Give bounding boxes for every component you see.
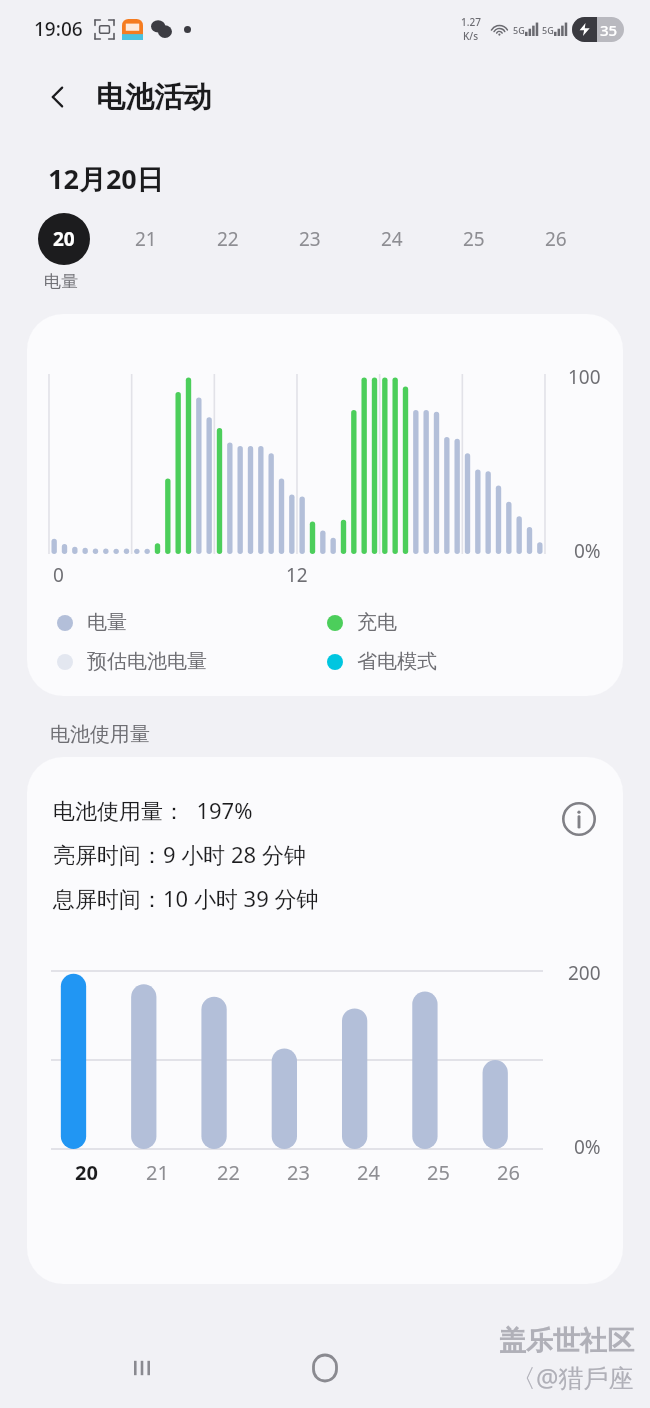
staticText: 充电 — [357, 610, 397, 635]
staticText: 电池使用量 — [50, 722, 150, 747]
staticText: 0% — [574, 1134, 601, 1160]
button[interactable]: 24 — [366, 213, 448, 265]
staticText: 1.27 — [461, 15, 481, 29]
staticText: 0 — [53, 562, 64, 588]
staticText: 26 — [497, 1159, 520, 1186]
button[interactable]: 20 — [38, 213, 120, 292]
staticText: 23 — [287, 1159, 310, 1186]
staticText: 100 — [568, 364, 601, 390]
staticText: 亮屏时间：9 小时 28 分钟 — [53, 839, 306, 869]
staticText: 35 — [600, 20, 618, 40]
button[interactable]: Recents — [118, 1344, 166, 1392]
staticText: 26 — [545, 226, 567, 252]
staticText: 25 — [427, 1159, 450, 1186]
staticText: 12月20日 — [48, 160, 164, 197]
staticText: 20 — [75, 1159, 98, 1186]
staticText: 21 — [135, 226, 157, 252]
staticText: 电量 — [44, 271, 78, 292]
staticText: 20 — [53, 226, 75, 252]
staticText: 19:06 — [34, 16, 83, 42]
staticText: 24 — [381, 226, 403, 252]
staticText: 0% — [574, 538, 601, 564]
staticText: 电池活动 — [96, 79, 212, 116]
staticText: 省电模式 — [357, 649, 437, 674]
staticText: 23 — [299, 226, 321, 252]
staticText: 25 — [463, 226, 485, 252]
staticText: 5G — [542, 24, 554, 36]
staticText: 21 — [146, 1159, 169, 1186]
staticText: 200 — [568, 960, 601, 986]
staticText: 22 — [217, 1159, 240, 1186]
button[interactable]: 26 — [530, 213, 612, 265]
button[interactable]: 25 — [448, 213, 530, 265]
staticText: 电池使用量： 197% — [53, 795, 253, 825]
staticText: 22 — [217, 226, 239, 252]
staticText: 预估电池电量 — [87, 649, 207, 674]
staticText: 24 — [357, 1159, 380, 1186]
button[interactable]: Home — [299, 1342, 351, 1394]
button[interactable]: 21 — [120, 213, 202, 265]
staticText: 〈@猎戶座 — [511, 1360, 634, 1394]
button[interactable]: 22 — [202, 213, 284, 265]
staticText: K/s — [463, 29, 479, 43]
staticText: 盖乐世社区 — [499, 1324, 634, 1358]
button[interactable]: 23 — [284, 213, 366, 265]
button[interactable]: 100 — [27, 314, 623, 696]
staticText: 电量 — [87, 610, 127, 635]
button[interactable]: Information — [557, 797, 601, 841]
staticText: 5G — [513, 24, 525, 36]
button[interactable]: Back — [38, 77, 78, 117]
staticText: 息屏时间：10 小时 39 分钟 — [53, 883, 319, 913]
staticText: 12 — [286, 562, 308, 588]
